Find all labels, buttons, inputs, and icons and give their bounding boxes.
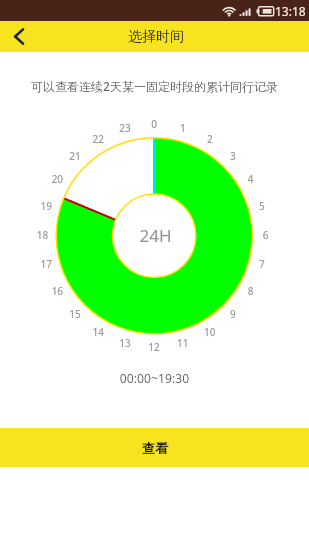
staticText: 13:18 [275,3,306,19]
staticText: 24H [1,224,309,247]
button[interactable]: 查看 [0,428,309,467]
staticText: 选择时间 [128,28,184,46]
staticText: 可以查看连续2天某一固定时段的累计同行记录 [0,78,309,94]
staticText: 00:00~19:30 [0,370,309,387]
button[interactable]: Back [0,21,40,52]
staticText: 查看 [142,440,168,456]
